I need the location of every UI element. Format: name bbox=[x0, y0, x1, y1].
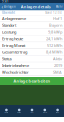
staticText: Anlagenname bbox=[2, 16, 26, 21]
button[interactable]: Inbetriebnahme bbox=[0, 62, 64, 69]
button[interactable]: Standort bbox=[0, 22, 64, 29]
staticText: Bayern bbox=[49, 23, 62, 28]
staticText: Gesamtertrag bbox=[2, 49, 27, 55]
button[interactable]: Home bbox=[0, 105, 13, 117]
staticText: ‹ bbox=[1, 3, 3, 10]
staticText: Mehr bbox=[56, 112, 60, 113]
staticText: Ertrag heute bbox=[2, 36, 23, 41]
button[interactable]: Gesamtertrag bbox=[0, 49, 64, 56]
staticText: Standort bbox=[2, 23, 16, 28]
button[interactable]: Leistung bbox=[0, 29, 64, 35]
button[interactable]: Neu bbox=[26, 105, 38, 117]
button[interactable]: Anlagenname bbox=[0, 15, 64, 22]
staticText: Anlage bearbeiten bbox=[13, 78, 50, 84]
button[interactable]: Status bbox=[0, 56, 64, 62]
staticText: Daten bbox=[17, 112, 21, 113]
button[interactable]: Daten bbox=[13, 105, 26, 117]
button[interactable]: Ertrag heute bbox=[0, 35, 64, 42]
staticText: Ertrag Monat bbox=[2, 43, 25, 48]
staticText: Status bbox=[2, 56, 12, 61]
staticText: Leistung bbox=[2, 29, 16, 35]
staticText: Hof 1 bbox=[53, 16, 62, 21]
button[interactable]: Alarm bbox=[38, 105, 51, 117]
staticText: 9,8 kWp bbox=[48, 29, 62, 35]
staticText: Mehr bbox=[55, 5, 62, 8]
button[interactable]: Mehr bbox=[55, 5, 62, 8]
staticText: Übersicht bbox=[2, 11, 15, 14]
staticText: 8,4 MWh bbox=[46, 49, 62, 55]
button[interactable]: Ertrag Monat bbox=[0, 42, 64, 49]
button[interactable]: Wechselrichter bbox=[0, 69, 64, 76]
staticText: 24,1 kWh bbox=[46, 36, 62, 41]
staticText: 2019 bbox=[54, 63, 62, 68]
staticText: Home bbox=[4, 112, 8, 113]
button[interactable]: Mehr bbox=[51, 105, 64, 117]
staticText: 512 kWh bbox=[47, 43, 62, 48]
staticText: Alarm bbox=[43, 112, 47, 113]
staticText: Aktiv bbox=[53, 56, 62, 61]
staticText: Inbetriebnahme bbox=[2, 63, 29, 68]
staticText: Neu bbox=[30, 112, 33, 113]
staticText: 9:41 bbox=[2, 0, 9, 3]
staticText: Anlagen bbox=[4, 5, 16, 8]
button[interactable]: ‹ bbox=[1, 3, 16, 10]
staticText: Stand 12:04 bbox=[45, 11, 62, 14]
staticText: Anlagendetails bbox=[21, 4, 51, 9]
staticText: SMA bbox=[53, 69, 62, 75]
staticText: Wechselrichter bbox=[2, 69, 29, 75]
button[interactable]: Anlage bearbeiten bbox=[0, 77, 64, 85]
